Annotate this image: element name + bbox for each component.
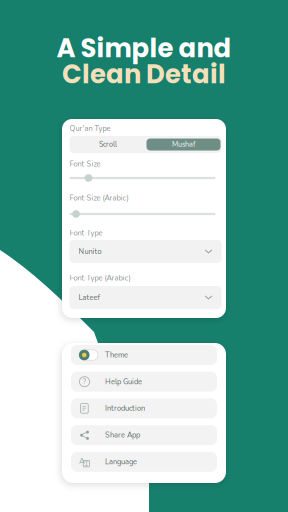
staticText: Font Size [69, 159, 100, 169]
staticText: Nunito [78, 246, 101, 257]
button[interactable]: Introduction [71, 398, 217, 418]
staticText: Font Type (Arabic) [69, 273, 130, 283]
button[interactable]: Mushaf [146, 138, 220, 150]
staticText: Scroll [99, 140, 117, 149]
button[interactable]: Scroll [69, 136, 146, 153]
staticText: Mushaf [172, 140, 195, 149]
staticText: Language [105, 457, 137, 467]
staticText: Lateef [78, 292, 99, 303]
staticText: Clean Detail [62, 56, 226, 92]
button[interactable]: A [71, 452, 217, 472]
staticText: Font Size (Arabic) [69, 193, 128, 203]
staticText: Font Type [69, 228, 102, 238]
staticText: Theme [105, 350, 128, 360]
button[interactable]: Theme [71, 345, 217, 365]
button[interactable]: ? [71, 372, 217, 392]
staticText: Help Guide [105, 377, 142, 387]
staticText: Qur'an Type [69, 123, 110, 134]
button[interactable]: Nunito [69, 240, 221, 263]
button[interactable]: Share App [71, 425, 217, 445]
staticText: Share App [105, 430, 140, 440]
button[interactable]: Lateef [69, 286, 221, 309]
staticText: Introduction [105, 403, 145, 413]
staticText: A Simple and [56, 30, 231, 66]
staticText: ? [82, 376, 86, 387]
staticText: A [79, 456, 85, 467]
